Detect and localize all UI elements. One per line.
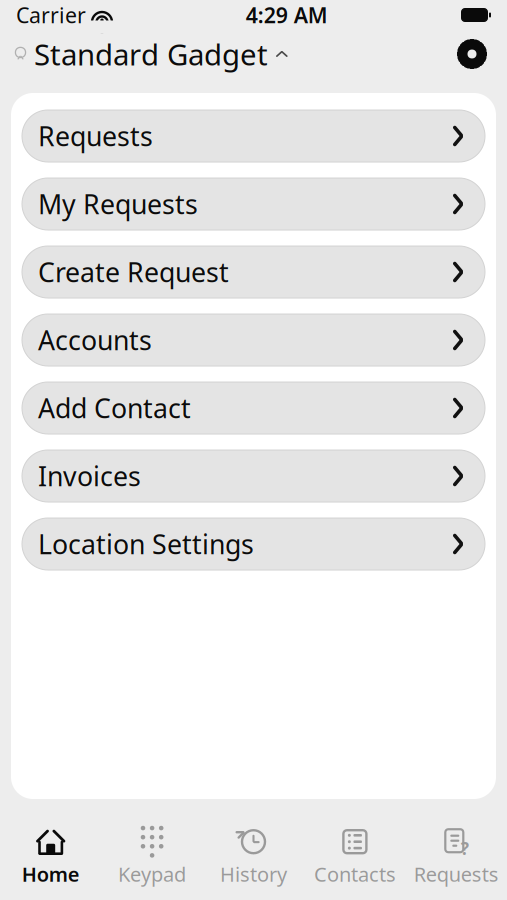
button[interactable]: Standard Gadget [14,34,289,73]
button[interactable]: Invoices [22,450,485,502]
button[interactable]: Settings [451,33,493,75]
staticText: Requests [414,861,499,887]
button[interactable]: Location Settings [22,518,485,570]
staticText: ? [461,837,469,860]
staticText: My Requests [38,186,198,222]
staticText: Accounts [38,322,152,358]
button[interactable]: Home [0,828,101,887]
staticText: Location Settings [38,526,254,562]
staticText: Invoices [38,458,141,494]
button[interactable]: Requests [22,110,485,162]
button[interactable]: Accounts [22,314,485,366]
button[interactable]: Create Request [22,246,485,298]
staticText: Create Request [38,254,229,290]
button[interactable]: ? [406,828,507,887]
staticText: 4:29 AM [246,1,328,29]
staticText: Carrier [16,1,86,29]
staticText: Keypad [118,861,186,887]
staticText: Contacts [314,861,396,887]
button[interactable]: Add Contact [22,382,485,434]
button[interactable]: My Requests [22,178,485,230]
staticText: Standard Gadget [34,34,268,73]
button[interactable]: Contacts [304,828,406,887]
staticText: History [220,861,287,887]
button[interactable]: Keypad [101,828,203,887]
staticText: Home [22,861,80,887]
button[interactable]: History [203,828,304,887]
staticText: Requests [38,118,153,154]
staticText: Add Contact [38,390,191,426]
